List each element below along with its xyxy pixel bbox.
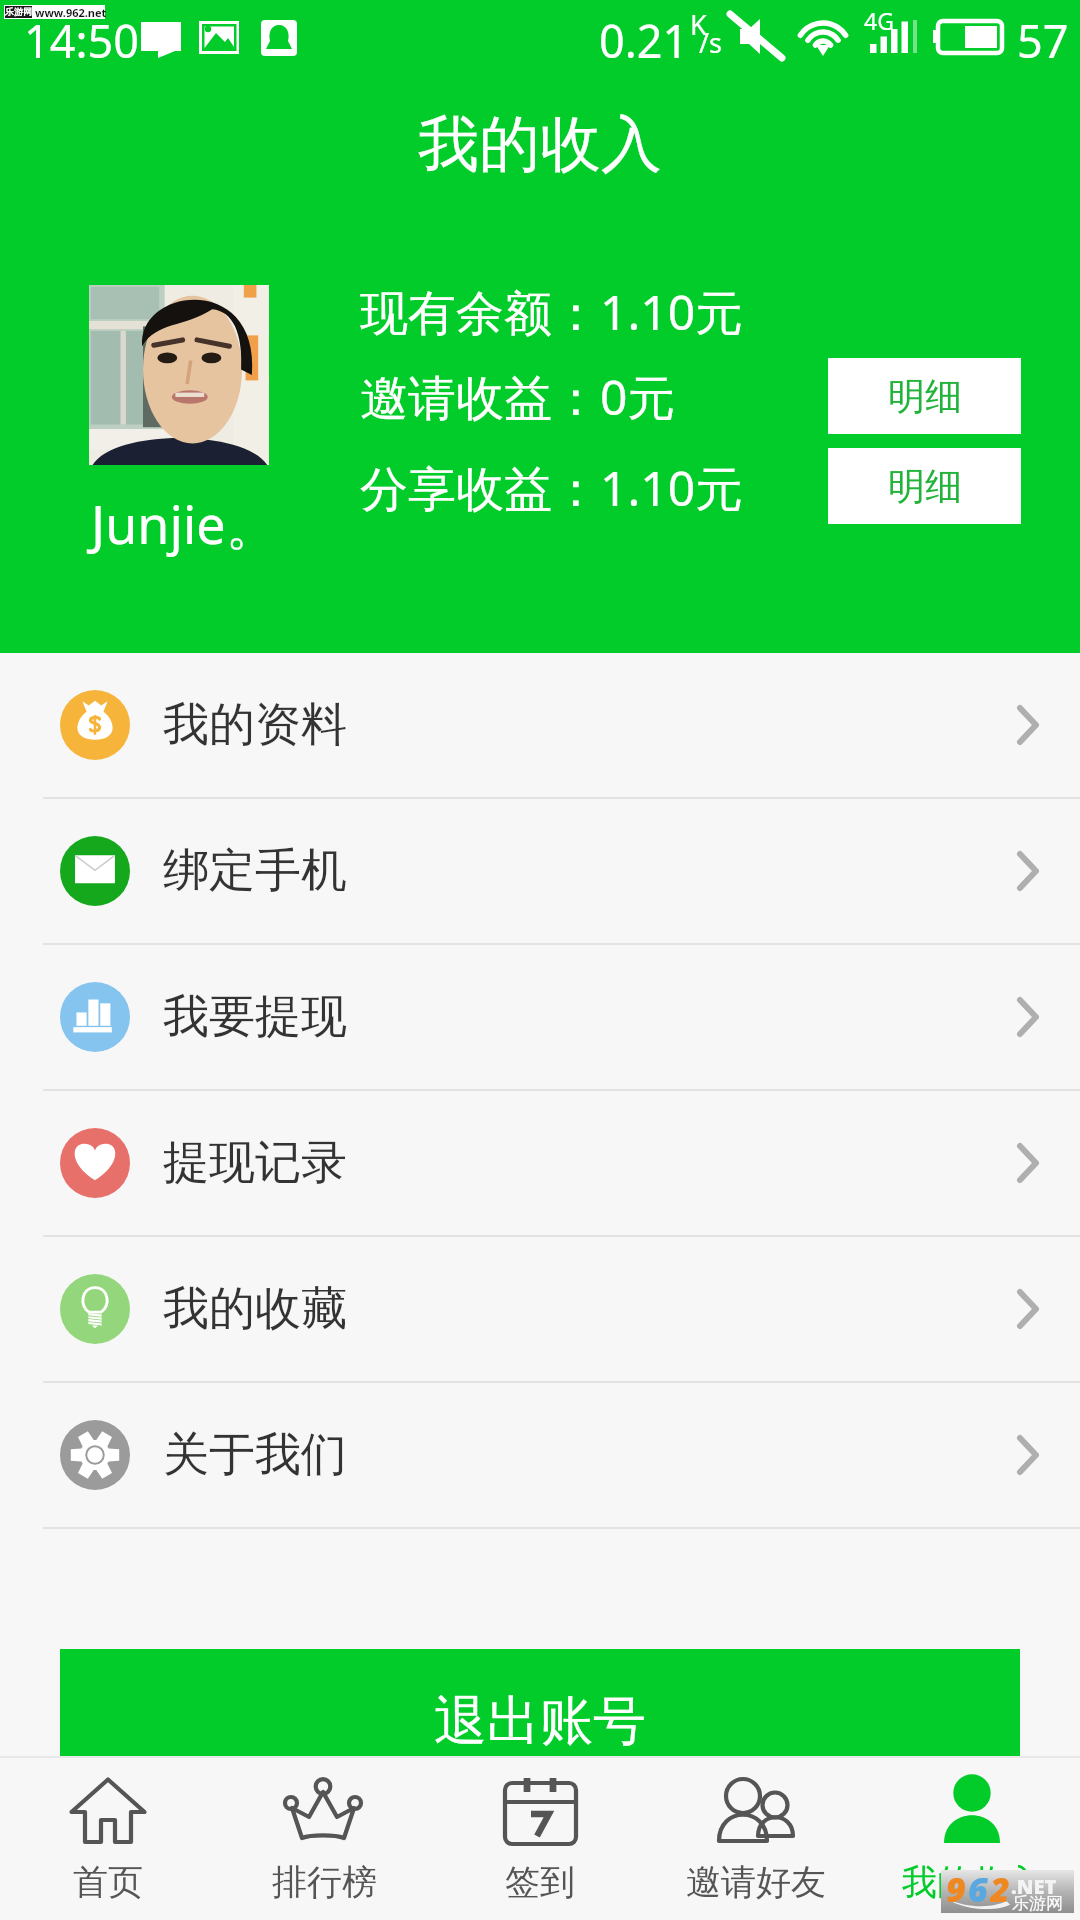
button[interactable]: 明细 (828, 448, 1021, 524)
staticText: 4G (864, 5, 894, 36)
staticText: 我的收入 (418, 106, 662, 183)
staticText: www.962.net (35, 5, 107, 19)
staticText: 分享收益：1.10元 (360, 455, 744, 521)
button[interactable]: 我要提现 (0, 945, 1080, 1089)
button[interactable]: 明细 (828, 358, 1021, 434)
button[interactable]: 我的收入 My income (864, 1758, 1080, 1920)
button[interactable]: 头像 Profile photo (89, 285, 269, 465)
staticText: 签到 (505, 1860, 575, 1904)
staticText: 邀请好友 (686, 1860, 826, 1904)
staticText: K (690, 6, 707, 43)
staticText: 我的收藏 (163, 1280, 347, 1338)
staticText: 我的资料 (163, 696, 347, 754)
staticText: 我的收入 (902, 1860, 1042, 1904)
staticText: 2 (990, 1866, 1010, 1909)
button[interactable]: 关于我们 (0, 1383, 1080, 1527)
staticText: 排行榜 (272, 1860, 377, 1904)
button[interactable]: 首页 Home (0, 1758, 216, 1920)
staticText: 现有余额：1.10元 (360, 279, 744, 345)
staticText: 邀请收益：0元 (360, 364, 676, 430)
button[interactable]: 我的收藏 (0, 1237, 1080, 1381)
staticText: 首页 (73, 1860, 143, 1904)
staticText: 明细 (888, 373, 962, 420)
button[interactable]: 绑定手机 (0, 799, 1080, 943)
staticText: 0.21 (599, 10, 689, 71)
staticText: 乐游网 (1012, 1893, 1063, 1914)
staticText: .NET (1011, 1873, 1057, 1900)
staticText: 我要提现 (163, 988, 347, 1046)
staticText: 关于我们 (163, 1426, 347, 1484)
staticText: 提现记录 (163, 1134, 347, 1192)
staticText: 14:50 (24, 10, 140, 71)
button[interactable]: 排行榜 Ranking (216, 1758, 432, 1920)
button[interactable]: 退出账号 (60, 1649, 1020, 1793)
button[interactable]: 提现记录 (0, 1091, 1080, 1235)
staticText: 9 (946, 1866, 966, 1909)
button[interactable]: 我的资料 (0, 653, 1080, 797)
staticText: /s (699, 24, 722, 61)
button[interactable]: 邀请好友 Invite friends (648, 1758, 864, 1920)
staticText: 退出账号 (434, 1688, 646, 1755)
staticText: 明细 (888, 463, 962, 510)
staticText: 6 (968, 1866, 988, 1909)
staticText: Junjie。 (91, 488, 278, 559)
staticText: 乐游网 (5, 6, 32, 17)
button[interactable]: 签到 Check in (432, 1758, 648, 1920)
staticText: 绑定手机 (163, 842, 347, 900)
staticText: 57 (1017, 10, 1069, 71)
